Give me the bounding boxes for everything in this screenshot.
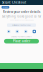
staticText: Review your order details (3, 10, 40, 14)
staticText: Shipping • Payment • Summary (11, 36, 32, 38)
staticText: Everything looks good so far (2, 15, 41, 18)
button[interactable]: Option (7, 30, 10, 33)
staticText: Step 2 (3, 6, 8, 8)
button[interactable]: Option (33, 30, 36, 33)
button[interactable]: Option (24, 30, 27, 33)
button[interactable]: Place order (4, 39, 39, 43)
button[interactable]: Step 2 (1, 6, 9, 9)
staticText: Secure Checkout (2, 1, 26, 4)
staticText: Place order (13, 39, 30, 43)
button[interactable]: Option (15, 30, 19, 33)
staticText: Estimated arrival Thursday (12, 24, 31, 26)
